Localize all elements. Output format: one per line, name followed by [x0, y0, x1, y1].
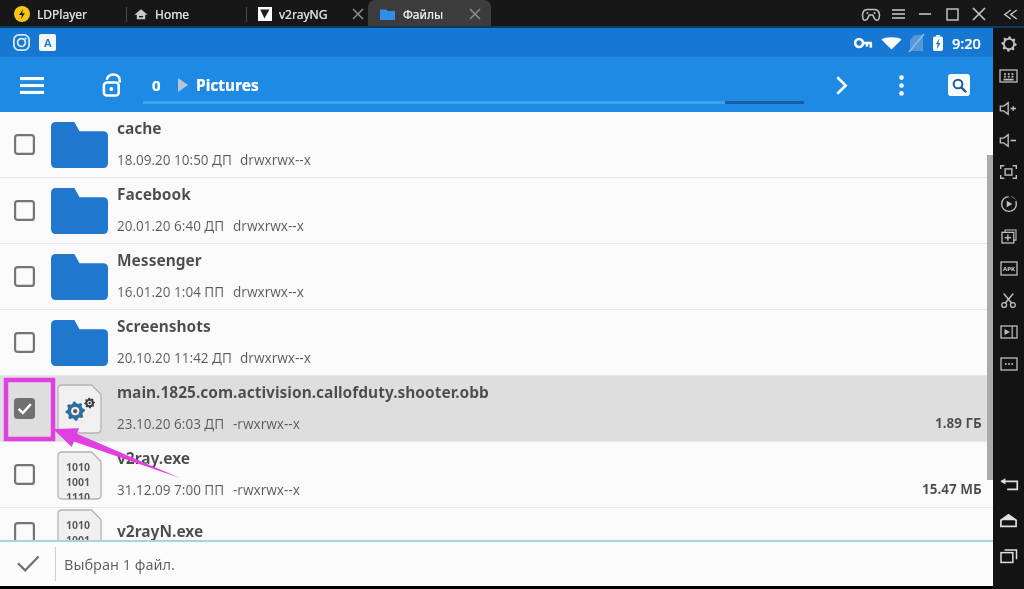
button[interactable]: Recents	[993, 538, 1024, 574]
staticText: drwxrwx--x	[233, 283, 304, 301]
button[interactable]: Menu	[886, 2, 910, 26]
button[interactable]: Forward	[822, 66, 860, 104]
button[interactable]: Выбран 1 файл.	[0, 542, 993, 586]
button[interactable]: Select main.1825.com.activision.callofdu…	[14, 398, 35, 419]
button[interactable]: Select v2rayN.exe	[0, 508, 993, 540]
button[interactable]: Close	[967, 2, 991, 26]
button[interactable]: Video	[993, 316, 1024, 348]
button[interactable]: Select v2ray.exe	[0, 442, 993, 507]
button[interactable]: Collapse sidebar	[998, 2, 1022, 26]
button[interactable]: Select Screenshots	[0, 310, 993, 375]
staticText: 31.12.09 7:00 ПП	[117, 481, 225, 499]
button[interactable]: Select v2ray.exe	[14, 464, 35, 485]
staticText: Messenger	[117, 249, 202, 270]
button[interactable]: Gamepad	[859, 2, 883, 26]
staticText: drwxrwx--x	[240, 349, 311, 367]
button[interactable]: Volume down	[993, 124, 1024, 156]
staticText: cache	[117, 117, 162, 138]
staticText: 1001	[66, 475, 91, 489]
staticText: Screenshots	[117, 315, 211, 336]
staticText: 1010	[66, 460, 91, 474]
button[interactable]: Back	[993, 466, 1024, 502]
button[interactable]: Select cache	[0, 112, 993, 177]
button[interactable]: Navigation menu	[12, 65, 52, 105]
staticText: -rwxrwx--x	[233, 415, 300, 433]
button[interactable]: Файлы	[368, 0, 491, 28]
staticText: 1.89 ГБ	[935, 414, 982, 432]
staticText: 20.10.20 11:42 ДП	[117, 349, 232, 367]
button[interactable]: Close v2rayNG tab	[349, 5, 367, 23]
button[interactable]: Unlock	[94, 68, 128, 102]
staticText: APK	[1003, 265, 1015, 273]
button[interactable]: Cut	[993, 284, 1024, 316]
button[interactable]: Minimize	[913, 2, 937, 26]
button[interactable]: Select Messenger	[14, 266, 35, 287]
button[interactable]: Add	[993, 220, 1024, 252]
staticText: Файлы	[403, 6, 444, 22]
staticText: v2rayN.exe	[117, 520, 204, 540]
button[interactable]: Close Files tab	[466, 5, 484, 23]
button[interactable]: Select Facebook	[0, 178, 993, 243]
staticText: main.1825.com.activision.callofduty.shoo…	[117, 381, 489, 402]
staticText: 16.01.20 1:04 ПП	[117, 283, 225, 301]
staticText: 23.10.20 6:03 ДП	[117, 415, 225, 433]
button[interactable]: Install APK	[993, 252, 1024, 284]
button[interactable]: Select cache	[14, 134, 35, 155]
staticText: v2rayNG	[279, 6, 328, 22]
staticText: drwxrwx--x	[233, 217, 304, 235]
staticText: 1001	[66, 533, 91, 540]
staticText: drwxrwx--x	[240, 151, 311, 169]
staticText: v2ray.exe	[117, 447, 191, 468]
button[interactable]: Volume up	[993, 92, 1024, 124]
button[interactable]: Keyboard	[993, 60, 1024, 92]
button[interactable]: More options	[882, 66, 920, 104]
button[interactable]: Select v2rayN.exe	[14, 522, 35, 540]
button[interactable]: Full screen	[993, 156, 1024, 188]
button[interactable]: Maximize	[940, 2, 964, 26]
button[interactable]: Search	[940, 66, 978, 104]
staticText: LDPlayer	[37, 6, 87, 22]
button[interactable]: Record	[993, 188, 1024, 220]
button[interactable]: Select Facebook	[14, 200, 35, 221]
staticText: 0	[152, 75, 161, 95]
button[interactable]: Select Messenger	[0, 244, 993, 309]
button[interactable]: Home	[993, 502, 1024, 538]
staticText: Выбран 1 файл.	[64, 554, 175, 574]
staticText: Home	[155, 6, 190, 22]
staticText: -rwxrwx--x	[233, 481, 300, 499]
staticText: 1010	[66, 518, 91, 532]
staticText: A	[44, 35, 52, 50]
staticText: 18.09.20 10:50 ДП	[117, 151, 232, 169]
staticText: 9:20	[952, 33, 981, 53]
staticText: 1110	[66, 490, 91, 499]
button[interactable]: Settings	[993, 28, 1024, 60]
staticText: 15.47 МБ	[922, 480, 982, 498]
button[interactable]: More	[993, 348, 1024, 380]
staticText: Facebook	[117, 183, 191, 204]
staticText: 20.01.20 6:40 ДП	[117, 217, 225, 235]
button[interactable]: Select main.1825.com.activision.callofdu…	[0, 376, 993, 441]
button[interactable]: Select Screenshots	[14, 332, 35, 353]
staticText: Pictures	[196, 74, 259, 95]
